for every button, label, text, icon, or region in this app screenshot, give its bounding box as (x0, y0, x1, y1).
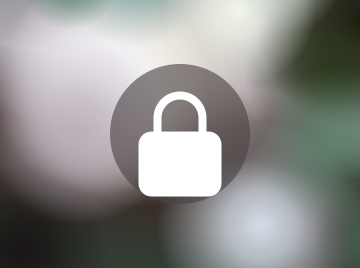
button[interactable]: Locked (110, 64, 250, 204)
